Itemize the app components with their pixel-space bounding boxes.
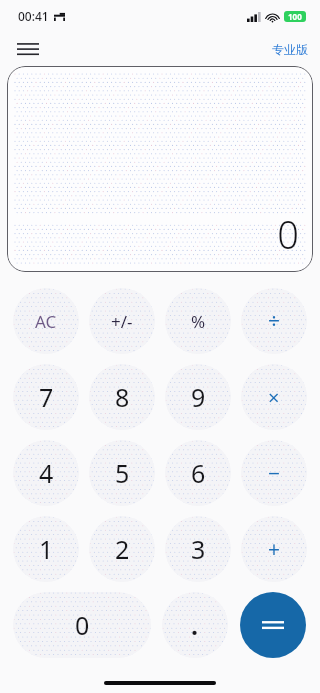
- button[interactable]: 9: [165, 364, 231, 430]
- button[interactable]: 3: [165, 516, 231, 582]
- button[interactable]: ×: [241, 364, 307, 430]
- button[interactable]: 7: [13, 364, 79, 430]
- button[interactable]: 5: [89, 440, 155, 506]
- button[interactable]: 0: [7, 66, 313, 272]
- staticText: 8: [115, 380, 130, 414]
- staticText: 9: [191, 380, 206, 414]
- staticText: 100: [288, 11, 302, 22]
- staticText: 4: [39, 456, 54, 490]
- staticText: 2: [115, 532, 130, 566]
- button[interactable]: .: [162, 592, 228, 658]
- staticText: AC: [35, 310, 57, 333]
- staticText: +: [268, 535, 281, 564]
- staticText: 3: [191, 532, 206, 566]
- staticText: 00:41: [18, 8, 49, 24]
- button[interactable]: Equals: [240, 592, 306, 658]
- staticText: 0: [75, 608, 90, 642]
- staticText: 1: [39, 532, 54, 566]
- button[interactable]: +/-: [89, 288, 155, 354]
- button[interactable]: 4: [13, 440, 79, 506]
- button[interactable]: AC: [13, 288, 79, 354]
- button[interactable]: ÷: [241, 288, 307, 354]
- staticText: 0: [277, 208, 299, 260]
- button[interactable]: 2: [89, 516, 155, 582]
- button[interactable]: Menu: [8, 32, 48, 66]
- button[interactable]: +: [241, 516, 307, 582]
- staticText: ×: [268, 384, 280, 411]
- staticText: 专业版: [272, 42, 308, 57]
- button[interactable]: 6: [165, 440, 231, 506]
- button[interactable]: %: [165, 288, 231, 354]
- staticText: ÷: [268, 307, 281, 336]
- button[interactable]: 1: [13, 516, 79, 582]
- staticText: +/-: [111, 310, 133, 333]
- button[interactable]: −: [241, 440, 307, 506]
- staticText: 5: [115, 456, 130, 490]
- button[interactable]: 8: [89, 364, 155, 430]
- staticText: 7: [39, 380, 54, 414]
- staticText: −: [268, 459, 281, 488]
- staticText: %: [191, 310, 206, 333]
- staticText: .: [191, 608, 199, 642]
- staticText: 6: [191, 456, 206, 490]
- button[interactable]: 专业版: [268, 38, 312, 61]
- button[interactable]: 0: [13, 592, 151, 658]
